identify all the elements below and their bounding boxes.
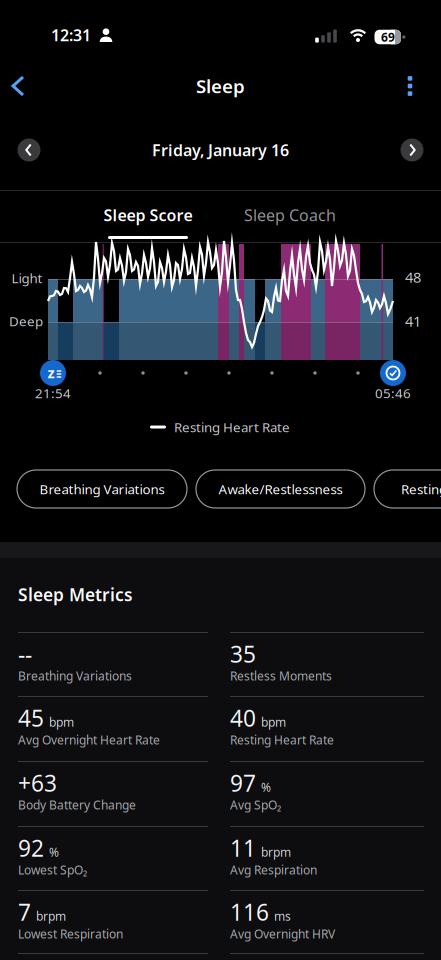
staticText: Deep [9, 312, 43, 330]
staticText: +63 [18, 768, 57, 798]
staticText: Awake/Restlessness [218, 480, 342, 498]
button[interactable]: Awake/Restlessness [196, 470, 365, 508]
staticText: Avg Respiration [230, 862, 317, 878]
staticText: Lowest SpO₂ [18, 862, 87, 878]
staticText: 48 [405, 267, 421, 287]
staticText: 97 [230, 768, 256, 798]
staticText: 11 [230, 833, 256, 863]
staticText: Friday, January 16 [152, 139, 289, 161]
button[interactable]: Resting Heart Rate [374, 470, 441, 508]
staticText: brpm [36, 908, 66, 924]
staticText: 35 [230, 639, 256, 669]
staticText: -- [18, 639, 32, 669]
staticText: 69 [381, 29, 395, 45]
staticText: Sleep Score [103, 204, 192, 226]
staticText: Avg Overnight Heart Rate [18, 732, 160, 748]
staticText: Breathing Variations [39, 480, 164, 498]
staticText: 92 [18, 833, 44, 863]
button[interactable]: Wake time [380, 360, 406, 386]
staticText: Sleep [196, 74, 245, 98]
staticText: 45 [18, 703, 44, 733]
staticText: 7 [18, 897, 31, 927]
staticText: 05:46 [375, 384, 411, 402]
staticText: bpm [261, 714, 286, 730]
staticText: Restless Moments [230, 668, 332, 684]
staticText: 41 [405, 311, 421, 331]
staticText: % [261, 779, 271, 795]
button[interactable]: Bedtime [40, 360, 66, 386]
staticText: Avg SpO₂ [230, 797, 281, 813]
staticText: Resting Heart Rate [230, 732, 334, 748]
staticText: 116 [230, 897, 269, 927]
staticText: Resting Heart Rate [174, 418, 290, 436]
staticText: % [49, 844, 59, 860]
staticText: 12:31 [51, 24, 91, 46]
staticText: Light [11, 269, 42, 287]
staticText: brpm [261, 844, 291, 860]
staticText: Lowest Respiration [18, 926, 123, 942]
staticText: bpm [49, 714, 74, 730]
button[interactable]: More options [400, 74, 420, 98]
staticText: Avg Overnight HRV [230, 926, 335, 942]
button[interactable]: Breathing Variations [17, 470, 187, 508]
button[interactable]: Friday, January 16 [110, 130, 330, 170]
staticText: 40 [230, 703, 256, 733]
staticText: z [47, 363, 54, 382]
staticText: Sleep Coach [244, 204, 336, 226]
staticText: Breathing Variations [18, 668, 132, 684]
staticText: 21:54 [35, 384, 71, 402]
button[interactable]: Sleep Score [78, 192, 218, 238]
staticText: Sleep Metrics [18, 583, 133, 606]
staticText: Resting Heart Rate [401, 480, 441, 498]
button[interactable]: Previous day [17, 138, 40, 161]
button[interactable]: Back [10, 75, 32, 97]
button[interactable]: Sleep Coach [220, 192, 360, 238]
staticText: ms [274, 908, 291, 924]
button[interactable]: Next day [400, 138, 423, 161]
staticText: Body Battery Change [18, 797, 136, 813]
